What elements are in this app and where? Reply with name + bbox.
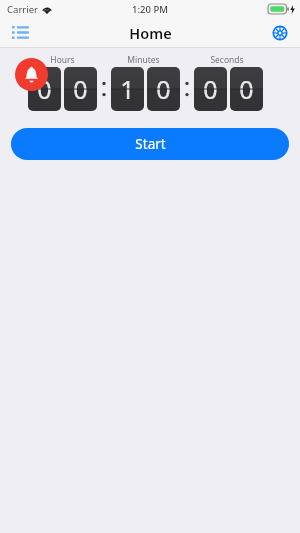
staticText: 1 bbox=[120, 72, 135, 106]
staticText: Start bbox=[135, 135, 166, 153]
staticText: 0 bbox=[156, 72, 171, 106]
button[interactable]: Start bbox=[11, 128, 289, 160]
button[interactable]: 1 bbox=[111, 67, 144, 111]
staticText: Carrier bbox=[7, 3, 38, 16]
staticText: 1:20 PM bbox=[132, 3, 168, 16]
staticText: Minutes bbox=[127, 54, 160, 66]
button[interactable]: Alarm bbox=[15, 58, 48, 91]
staticText: 0 bbox=[203, 72, 218, 106]
staticText: 0 bbox=[239, 72, 254, 106]
button[interactable]: Menu bbox=[0, 18, 40, 47]
button[interactable]: 0 bbox=[147, 67, 180, 111]
staticText: 0 bbox=[73, 72, 88, 106]
staticText: Hours bbox=[50, 54, 75, 66]
button[interactable]: 0 bbox=[194, 67, 227, 111]
button[interactable]: 0 bbox=[64, 67, 97, 111]
staticText: 0 bbox=[37, 72, 52, 106]
staticText: Seconds bbox=[210, 54, 244, 66]
staticText: Home bbox=[129, 23, 172, 43]
button[interactable]: 0 bbox=[28, 67, 61, 111]
button[interactable]: Settings bbox=[260, 18, 300, 47]
button[interactable]: 0 bbox=[230, 67, 263, 111]
